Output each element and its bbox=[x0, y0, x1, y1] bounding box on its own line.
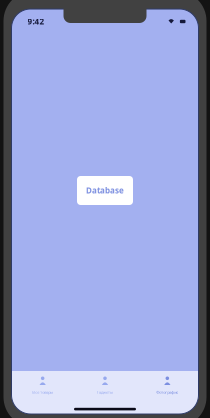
staticText: Гаджеты bbox=[97, 389, 113, 395]
button[interactable]: Фотография bbox=[136, 371, 198, 397]
staticText: Database bbox=[86, 185, 124, 196]
button[interactable]: Гаджеты bbox=[74, 371, 136, 397]
staticText: Фотография bbox=[156, 389, 178, 395]
staticText: 9:42 bbox=[27, 16, 44, 27]
button[interactable]: Все товары bbox=[11, 371, 74, 397]
staticText: Все товары bbox=[32, 389, 53, 395]
